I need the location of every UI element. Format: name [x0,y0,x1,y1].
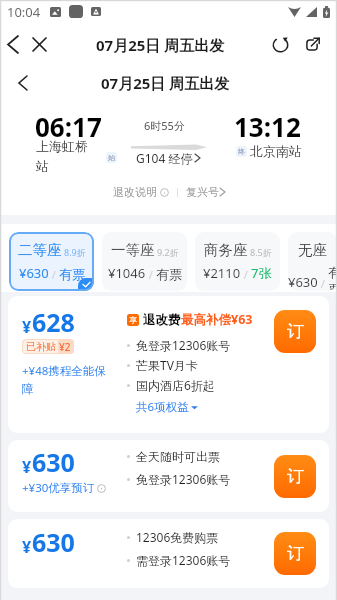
staticText: 07月25日 周五出发 [96,35,225,55]
staticText: 9.2折 [157,246,179,258]
button[interactable]: Refresh [264,28,296,61]
staticText: 07月25日 周五出发 [101,73,230,93]
button[interactable]: 订 [274,455,316,498]
staticText: 复兴号 [186,185,219,199]
button[interactable]: Share [296,28,328,61]
button[interactable]: Close [26,28,52,61]
staticText: 终 [238,147,245,156]
button[interactable]: 二等座 [9,232,94,291]
staticText: ¥2110 [203,264,241,282]
staticText: ¥ [22,316,32,338]
button[interactable]: ¥ [8,519,329,588]
button[interactable]: 一等座 [102,232,187,291]
staticText: ¥1046 [108,264,146,282]
staticText: 国内酒店6折起 [136,377,215,393]
staticText: 有票 [328,264,337,291]
staticText: ¥ [22,456,32,478]
staticText: 630 [32,445,75,479]
staticText: 订 [287,543,304,564]
button[interactable]: ¥ [8,296,329,433]
staticText: ¥2 [59,340,71,354]
staticText: +¥30优享预订 [22,480,95,496]
staticText: 退改说明 [113,185,157,199]
staticText: ¥630 [288,273,318,291]
button[interactable]: Back [0,61,46,105]
staticText: 免登录12306账号 [136,337,231,353]
button[interactable]: 无座 [288,232,337,291]
button[interactable]: G104 经停 [136,150,200,166]
button[interactable]: 订 [274,532,316,575]
staticText: 有票 [156,266,182,282]
staticText: 12306免费购票 [136,529,219,545]
staticText: 已补贴 [26,340,56,353]
staticText: / [241,267,251,282]
staticText: 二等座 [18,241,62,259]
staticText: 13:12 [234,109,301,144]
staticText: 北京南站 [250,143,302,159]
staticText: 商务座 [204,241,248,259]
button[interactable]: 复兴号 [186,185,225,199]
staticText: 8.9折 [64,246,86,258]
staticText: 8.5折 [250,246,272,258]
staticText: +¥48携程全能保障 [22,363,113,396]
staticText: 芒果TV月卡 [136,357,198,373]
button[interactable]: 商务座 [195,232,280,291]
staticText: 10:04 [7,3,41,21]
staticText: 退改费 [143,312,181,328]
staticText: / [49,267,59,282]
staticText: / [146,267,156,282]
staticText: 有票 [59,266,85,282]
button[interactable]: ¥ [8,440,329,512]
staticText: 免登录12306账号 [136,471,231,487]
staticText: 订 [287,321,304,342]
staticText: / [318,276,328,291]
staticText: 7张 [251,264,272,282]
staticText: 最高补偿¥63 [181,311,253,328]
button[interactable]: 退改说明 [113,185,169,199]
staticText: 需登录12306账号 [136,552,231,568]
staticText: 共6项权益 [136,399,189,415]
staticText: 630 [32,525,75,559]
staticText: 无座 [298,241,327,259]
staticText: 享 [129,315,137,325]
staticText: 628 [32,305,75,339]
staticText: 上海虹桥站 [36,138,90,175]
staticText: 订 [287,466,304,487]
staticText: 全天随时可出票 [136,449,220,464]
staticText: ¥ [22,536,32,558]
staticText: 06:17 [35,109,102,144]
staticText: G104 经停 [136,150,193,166]
button[interactable]: 订 [274,310,316,353]
staticText: 一等座 [111,241,155,259]
staticText: 始 [108,153,115,162]
button[interactable]: 共6项权益 [136,399,198,415]
staticText: ¥630 [19,264,49,282]
staticText: 6时55分 [144,118,185,133]
button[interactable]: Back [0,28,26,61]
